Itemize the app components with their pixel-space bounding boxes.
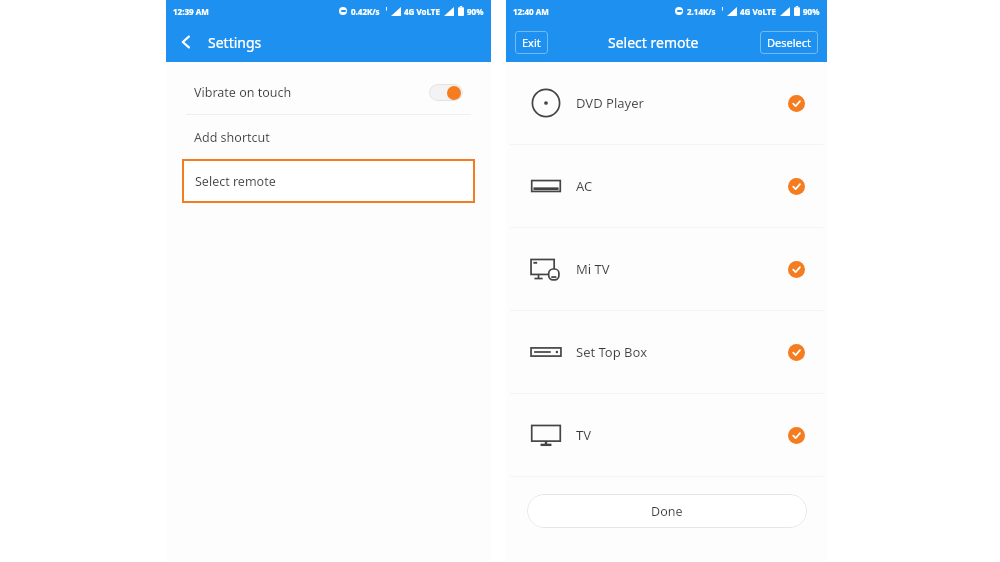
button[interactable]: Set Top Box <box>506 311 827 393</box>
button[interactable]: Mi TV <box>506 228 827 310</box>
staticText: 4G VoLTE <box>404 6 440 17</box>
button[interactable]: Add shortcut <box>194 115 463 159</box>
button[interactable]: AC <box>506 145 827 227</box>
staticText: 2.14K/s <box>687 6 716 17</box>
button[interactable]: Deselect <box>760 31 818 54</box>
button[interactable]: TV <box>506 394 827 476</box>
staticText: Settings <box>208 33 262 52</box>
staticText: AC <box>576 177 593 195</box>
staticText: 90% <box>467 6 484 17</box>
button[interactable]: DVD Player <box>506 62 827 144</box>
staticText: Mi TV <box>576 260 610 278</box>
staticText: Vibrate on touch <box>194 84 292 101</box>
staticText: 12:40 AM <box>513 6 549 17</box>
staticText: Done <box>651 503 683 520</box>
staticText: Select remote <box>195 173 276 190</box>
staticText: 0.42K/s <box>351 6 380 17</box>
staticText: Deselect <box>767 35 811 50</box>
button[interactable]: Done <box>527 494 807 528</box>
staticText: Add shortcut <box>194 129 270 146</box>
button[interactable]: Vibrate on touch <box>194 70 463 114</box>
staticText: Set Top Box <box>576 343 648 361</box>
button[interactable]: Exit <box>515 31 548 54</box>
staticText: Select remote <box>608 33 699 52</box>
button[interactable]: Back <box>166 22 206 62</box>
staticText: 4G VoLTE <box>740 6 776 17</box>
button[interactable]: Select remote <box>182 159 475 203</box>
staticText: Exit <box>522 35 541 50</box>
staticText: TV <box>576 426 592 444</box>
staticText: 90% <box>803 6 820 17</box>
staticText: DVD Player <box>576 94 644 112</box>
staticText: 12:39 AM <box>173 6 209 17</box>
